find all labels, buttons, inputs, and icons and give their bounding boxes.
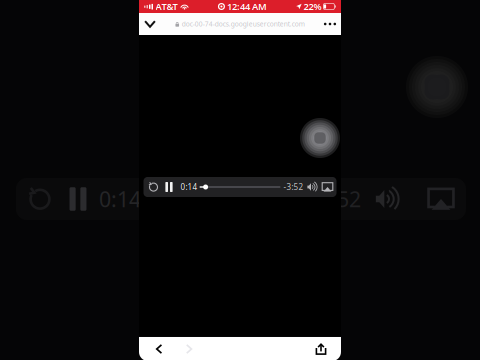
button[interactable]: Dismiss	[135, 13, 165, 35]
button[interactable]: Back	[144, 337, 174, 360]
button[interactable]: More	[315, 13, 345, 35]
button[interactable]: Forward	[174, 337, 204, 360]
staticText: doc-00-74-docs.googleusercontent.com	[182, 20, 305, 28]
staticText: 52	[337, 185, 361, 213]
button[interactable]: Volume	[306, 177, 319, 197]
staticText: 0:14	[99, 185, 141, 213]
button[interactable]: Share	[306, 337, 336, 360]
staticText: 0:14	[180, 182, 197, 192]
staticText: 12:44 AM	[227, 0, 267, 13]
staticText: 22%	[303, 0, 321, 13]
staticText: AT&T	[155, 0, 177, 13]
button[interactable]: Pause	[162, 177, 175, 197]
button[interactable]: AirPlay	[321, 177, 333, 197]
button[interactable]: Skip back 15 seconds	[146, 177, 160, 197]
staticText: -3:52	[283, 182, 303, 192]
